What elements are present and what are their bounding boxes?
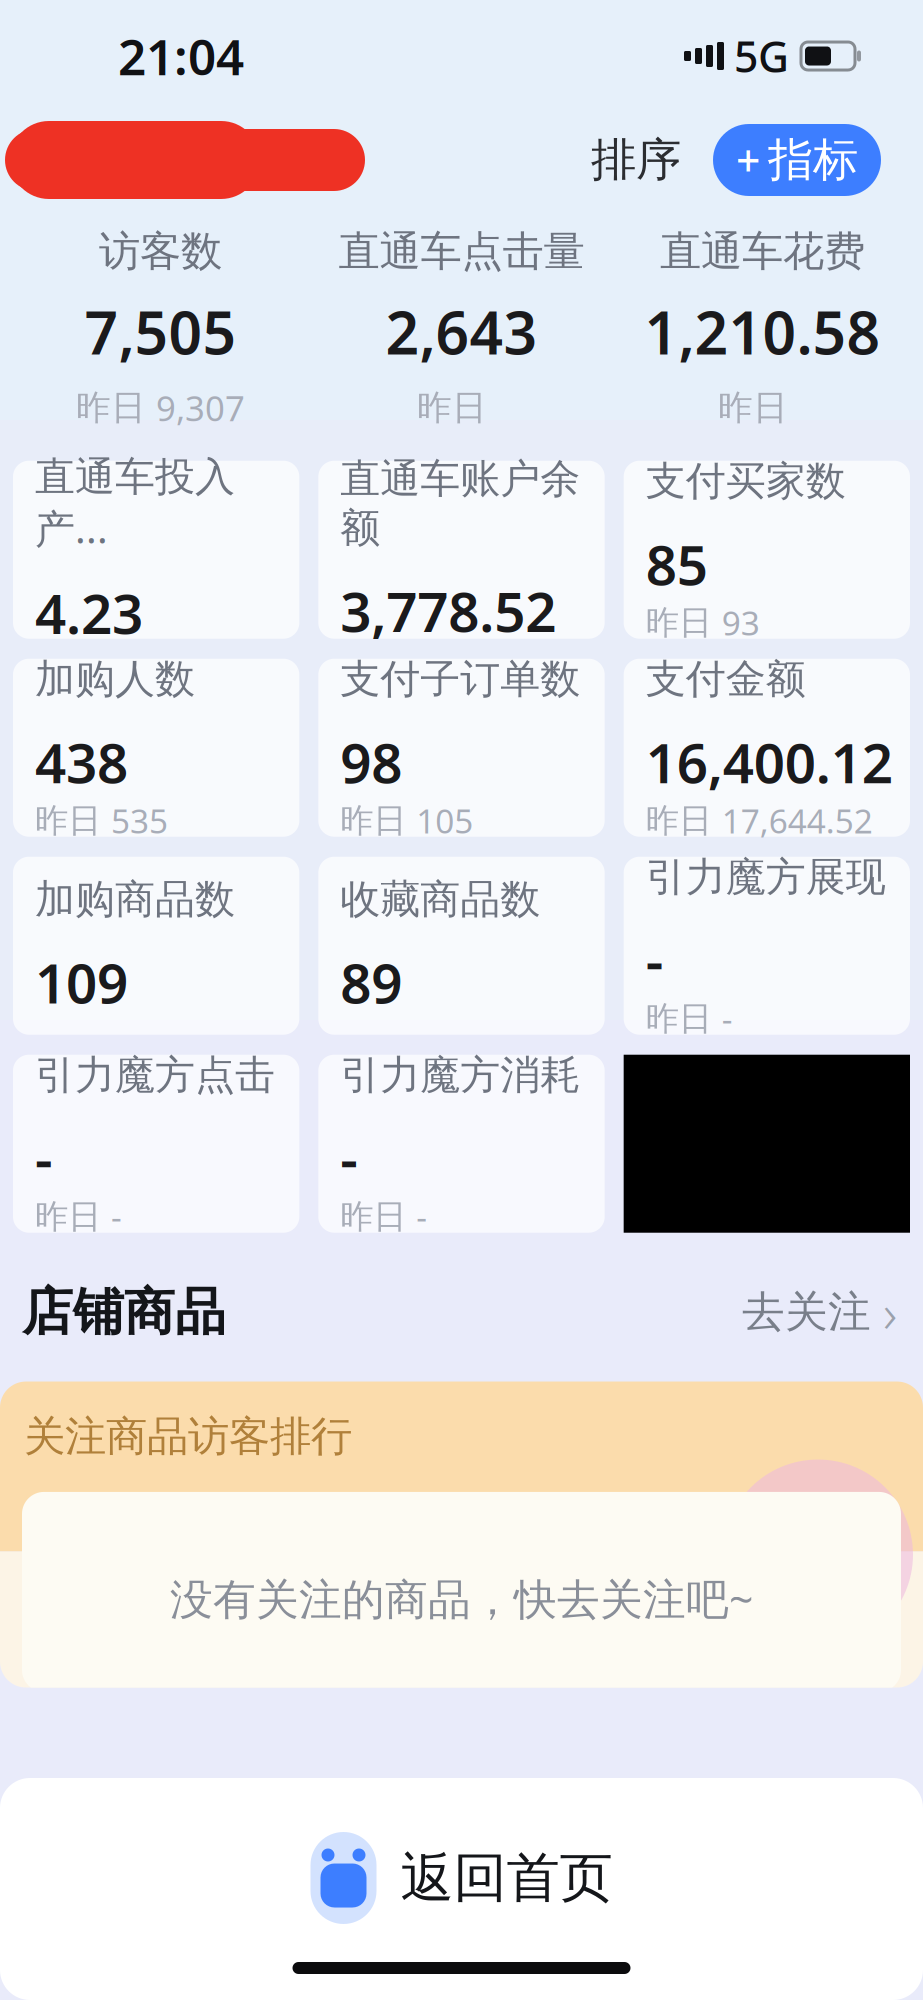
- button[interactable]: 引力魔方消耗: [318, 1055, 605, 1233]
- button[interactable]: 排序: [585, 124, 687, 196]
- staticText: 535: [111, 798, 168, 843]
- staticText: 昨日: [646, 998, 712, 1039]
- staticText: 引力魔方点击: [35, 1051, 275, 1100]
- staticText: -: [722, 996, 733, 1041]
- staticText: 没有关注的商品，快去关注吧~: [170, 1570, 753, 1627]
- button[interactable]: 引力魔方点击: [13, 1055, 299, 1233]
- staticText: 引力魔方消耗: [340, 1051, 580, 1100]
- staticText: 直通车花费: [660, 226, 865, 277]
- staticText: 返回首页: [400, 1845, 612, 1911]
- button[interactable]: 返回首页: [280, 1822, 642, 1934]
- staticText: 直通车投入产...: [35, 452, 235, 554]
- staticText: 438: [35, 726, 128, 798]
- staticText: 89: [340, 946, 402, 1019]
- staticText: 昨日: [35, 800, 101, 841]
- button[interactable]: 加购人数: [13, 659, 299, 837]
- staticText: 直通车点击量: [338, 226, 584, 277]
- staticText: 昨日: [417, 386, 487, 429]
- staticText: 昨日: [646, 800, 712, 841]
- staticText: ›: [883, 1277, 897, 1347]
- staticText: 昨日: [646, 602, 712, 643]
- staticText: 支付买家数: [646, 457, 846, 506]
- button[interactable]: 支付金额: [624, 659, 910, 837]
- staticText: +: [736, 132, 760, 188]
- staticText: 21:04: [118, 23, 244, 89]
- staticText: 加购商品数: [35, 875, 235, 924]
- button[interactable]: 直通车账户余额: [318, 461, 605, 639]
- staticText: 昨日: [718, 386, 788, 429]
- staticText: -: [340, 1122, 357, 1194]
- staticText: -: [646, 924, 663, 996]
- staticText: 访客数: [99, 226, 222, 277]
- button[interactable]: +: [713, 124, 881, 196]
- staticText: -: [416, 1194, 427, 1239]
- staticText: 引力魔方展现: [646, 853, 886, 902]
- staticText: 98: [340, 726, 402, 798]
- staticText: 5G: [734, 28, 789, 84]
- staticText: 排序: [591, 132, 681, 188]
- staticText: 85: [646, 528, 708, 600]
- button[interactable]: 支付子订单数: [318, 659, 605, 837]
- button[interactable]: 收藏商品数: [318, 857, 605, 1035]
- staticText: 直通车账户余额: [340, 454, 580, 553]
- staticText: 支付金额: [646, 655, 806, 704]
- staticText: 昨日: [35, 1196, 101, 1237]
- staticText: 2,643: [385, 293, 537, 371]
- staticText: 昨日: [76, 386, 146, 429]
- staticText: 9,307: [156, 385, 245, 431]
- staticText: 加购人数: [35, 655, 195, 704]
- staticText: 关注商品访客排行: [24, 1411, 352, 1462]
- staticText: 1,210.58: [644, 293, 880, 371]
- staticText: -: [111, 1194, 122, 1239]
- staticText: 昨日: [340, 800, 406, 841]
- button[interactable]: 支付买家数: [624, 461, 910, 639]
- staticText: 17,644.52: [722, 798, 873, 843]
- staticText: -: [35, 1122, 52, 1194]
- staticText: 4.23: [35, 576, 143, 649]
- button[interactable]: 加购商品数: [13, 857, 299, 1035]
- staticText: 去关注: [742, 1286, 871, 1338]
- button[interactable]: 引力魔方展现: [624, 857, 910, 1035]
- staticText: 93: [722, 600, 760, 645]
- staticText: 昨日: [340, 1196, 406, 1237]
- button[interactable]: 直通车投入产...: [13, 461, 299, 639]
- staticText: 店铺商品: [22, 1281, 226, 1343]
- staticText: 指标: [768, 132, 858, 188]
- button[interactable]: 去关注: [738, 1269, 901, 1355]
- staticText: 105: [416, 798, 473, 843]
- staticText: 16,400.12: [646, 726, 893, 798]
- staticText: 支付子订单数: [340, 655, 580, 704]
- staticText: 3,778.52: [340, 574, 556, 647]
- staticText: 109: [35, 946, 128, 1019]
- staticText: 收藏商品数: [340, 875, 540, 924]
- staticText: 7,505: [84, 293, 236, 371]
